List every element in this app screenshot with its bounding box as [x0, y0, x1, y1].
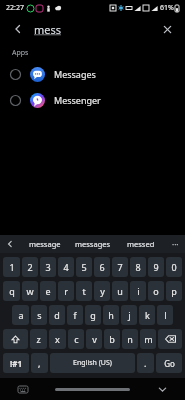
button[interactable]: 9 [148, 257, 164, 277]
button[interactable]: 4 [58, 257, 74, 277]
staticText: , [38, 357, 41, 369]
button[interactable]: Keyboard [16, 382, 30, 396]
button[interactable]: y [94, 281, 110, 301]
staticText: ··· [172, 239, 179, 250]
button[interactable]: !#1 [3, 353, 29, 373]
button[interactable]: 5 [76, 257, 92, 277]
button[interactable]: l [157, 305, 173, 325]
staticText: x [55, 333, 60, 345]
staticText: k [145, 309, 150, 321]
button[interactable]: g [85, 305, 101, 325]
staticText: l [164, 309, 167, 321]
staticText: . [144, 357, 147, 369]
staticText: 8 [135, 261, 141, 273]
button[interactable]: English (US) [50, 353, 135, 373]
staticText: b [109, 333, 115, 345]
staticText: g [90, 309, 96, 321]
staticText: w [26, 285, 34, 297]
staticText: messages [75, 239, 111, 249]
staticText: messed [127, 239, 155, 249]
staticText: p [171, 285, 177, 297]
button[interactable]: 3 [40, 257, 56, 277]
button[interactable]: More options [165, 235, 185, 253]
staticText: a [18, 309, 24, 321]
staticText: h [108, 309, 114, 321]
button[interactable]: 0 [166, 257, 182, 277]
staticText: 7 [117, 261, 123, 273]
button[interactable]: t [76, 281, 92, 301]
staticText: 5 [81, 261, 87, 273]
staticText: 22:27 [6, 3, 24, 13]
staticText: English (US) [73, 358, 112, 368]
button[interactable]: . [137, 353, 154, 373]
staticText: q [9, 285, 15, 297]
button[interactable]: c [68, 329, 84, 349]
staticText: t [82, 285, 86, 297]
staticText: 4 [63, 261, 69, 273]
button[interactable]: h [103, 305, 119, 325]
staticText: Messenger [54, 94, 101, 106]
staticText: 6 [99, 261, 105, 273]
button[interactable]: 2 [22, 257, 38, 277]
button[interactable]: q [3, 281, 20, 301]
button[interactable]: p [166, 281, 182, 301]
button[interactable]: s [31, 305, 47, 325]
button[interactable] [3, 329, 28, 349]
staticText: j [128, 309, 131, 321]
button[interactable]: o [148, 281, 164, 301]
button[interactable]: m [140, 329, 156, 349]
button[interactable]: a [12, 305, 29, 325]
staticText: Apps [12, 48, 29, 58]
button[interactable]: r [58, 281, 74, 301]
staticText: z [36, 333, 41, 345]
staticText: y [100, 285, 105, 297]
staticText: 9 [153, 261, 159, 273]
staticText: 1 [9, 261, 15, 273]
button[interactable]: messed [117, 235, 165, 253]
button[interactable]: Clear [157, 19, 177, 39]
button[interactable]: 7 [112, 257, 128, 277]
button[interactable]: b [104, 329, 120, 349]
staticText: mess [34, 22, 62, 37]
button[interactable]: z [30, 329, 47, 349]
button[interactable]: k [139, 305, 155, 325]
button[interactable]: n [122, 329, 138, 349]
button[interactable]: v [86, 329, 102, 349]
staticText: e [45, 285, 51, 297]
button[interactable]: x [49, 329, 66, 349]
button[interactable]: , [31, 353, 48, 373]
button[interactable]: i [130, 281, 146, 301]
button[interactable]: Messenger [0, 87, 185, 113]
staticText: 2 [27, 261, 33, 273]
staticText: v [92, 333, 97, 345]
button[interactable]: 1 [3, 257, 20, 277]
button[interactable]: d [49, 305, 65, 325]
staticText: c [74, 333, 79, 345]
staticText: 3 [45, 261, 51, 273]
staticText: f [73, 309, 77, 321]
staticText: s [37, 309, 42, 321]
staticText: m [144, 333, 153, 345]
button[interactable]: 6 [94, 257, 110, 277]
button[interactable]: Back [8, 19, 28, 39]
button[interactable]: Previous [0, 235, 20, 253]
button[interactable]: j [121, 305, 137, 325]
button[interactable]: w [22, 281, 38, 301]
button[interactable]: messages [69, 235, 117, 253]
button[interactable]: message [20, 235, 69, 253]
staticText: message [29, 239, 61, 249]
staticText: 61% [160, 3, 174, 13]
staticText: o [153, 285, 159, 297]
staticText: 0 [171, 261, 177, 273]
button[interactable] [158, 329, 182, 349]
button[interactable]: u [112, 281, 128, 301]
button[interactable]: Go [156, 353, 182, 373]
staticText: n [127, 333, 133, 345]
button[interactable]: f [67, 305, 83, 325]
staticText: Go [164, 358, 175, 369]
staticText: d [54, 309, 60, 321]
button[interactable]: Messages [0, 61, 185, 87]
button[interactable]: 8 [130, 257, 146, 277]
button[interactable]: Hide keyboard [155, 382, 169, 396]
button[interactable]: e [40, 281, 56, 301]
